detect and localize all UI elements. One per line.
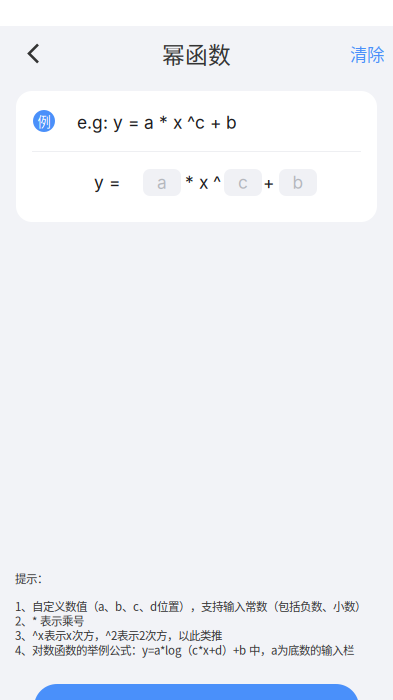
staticText: 幂函数 xyxy=(162,37,231,70)
button[interactable]: 清除 xyxy=(341,30,393,76)
staticText: 4、对数函数的举例公式：y=a*log（c*x+d）+b 中，a为底数的输入栏 xyxy=(15,644,354,655)
staticText: 例 xyxy=(37,111,50,131)
staticText: 提示： xyxy=(15,572,48,584)
staticText: 清除 xyxy=(350,41,384,66)
staticText: y = xyxy=(94,172,120,193)
staticText: * x ^ xyxy=(185,172,221,193)
staticText: b xyxy=(292,172,303,193)
staticText: + xyxy=(263,172,274,193)
staticText: 1、自定义数值（a、b、c、d位置），支持输入常数（包括负数、小数） xyxy=(15,600,366,612)
staticText: c xyxy=(238,172,248,193)
staticText: a xyxy=(157,172,167,193)
button[interactable]: Back xyxy=(9,30,55,76)
staticText: 2、* 表示乘号 xyxy=(15,615,84,626)
staticText: e.g: y = a * x ^c + b xyxy=(77,112,237,133)
button[interactable]: 确定 xyxy=(34,684,359,700)
staticText: 3、^x表示x次方，^2表示2次方，以此类推 xyxy=(15,629,222,641)
